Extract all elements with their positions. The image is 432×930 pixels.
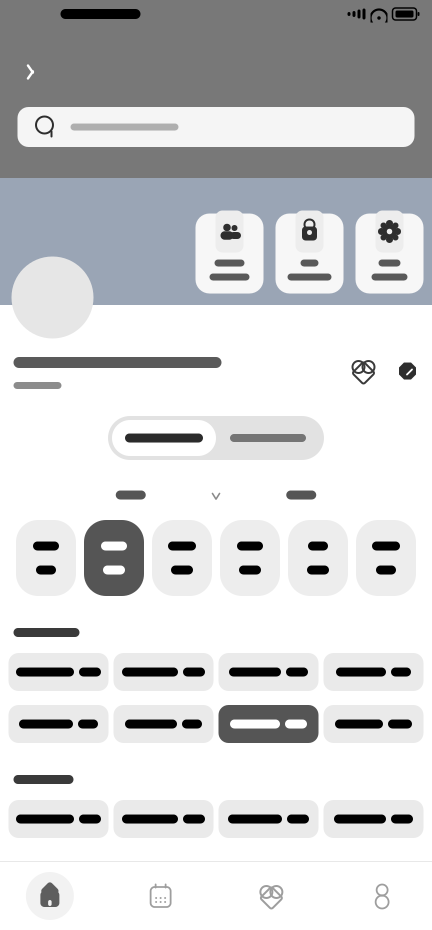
button[interactable] <box>218 705 318 743</box>
button[interactable] <box>218 653 318 691</box>
button[interactable] <box>113 705 213 743</box>
button[interactable] <box>323 800 423 838</box>
button[interactable] <box>195 213 263 293</box>
button[interactable]: Favorites <box>216 885 327 907</box>
button[interactable] <box>113 653 213 691</box>
button[interactable] <box>286 490 316 499</box>
button[interactable] <box>8 653 108 691</box>
button[interactable] <box>112 420 216 456</box>
button[interactable] <box>323 705 423 743</box>
button[interactable] <box>113 800 213 838</box>
button[interactable] <box>152 520 212 596</box>
button[interactable] <box>355 213 423 293</box>
button[interactable] <box>218 800 318 838</box>
button[interactable] <box>323 653 423 691</box>
button[interactable] <box>8 705 108 743</box>
button[interactable] <box>16 520 76 596</box>
button[interactable] <box>275 213 343 293</box>
button[interactable]: Search <box>17 107 414 147</box>
button[interactable] <box>220 520 280 596</box>
button[interactable] <box>288 520 348 596</box>
button[interactable]: Change month <box>207 486 225 504</box>
button[interactable]: Profile <box>327 884 432 908</box>
button[interactable]: Home <box>0 872 105 920</box>
button[interactable]: Favorite <box>351 359 375 383</box>
button[interactable] <box>356 520 416 596</box>
button[interactable]: Share <box>394 359 418 383</box>
button[interactable] <box>116 490 146 499</box>
button[interactable] <box>8 800 108 838</box>
button[interactable]: Calendar <box>105 884 216 908</box>
button[interactable] <box>216 420 320 456</box>
button[interactable] <box>84 520 144 596</box>
button[interactable]: Back <box>15 55 49 89</box>
